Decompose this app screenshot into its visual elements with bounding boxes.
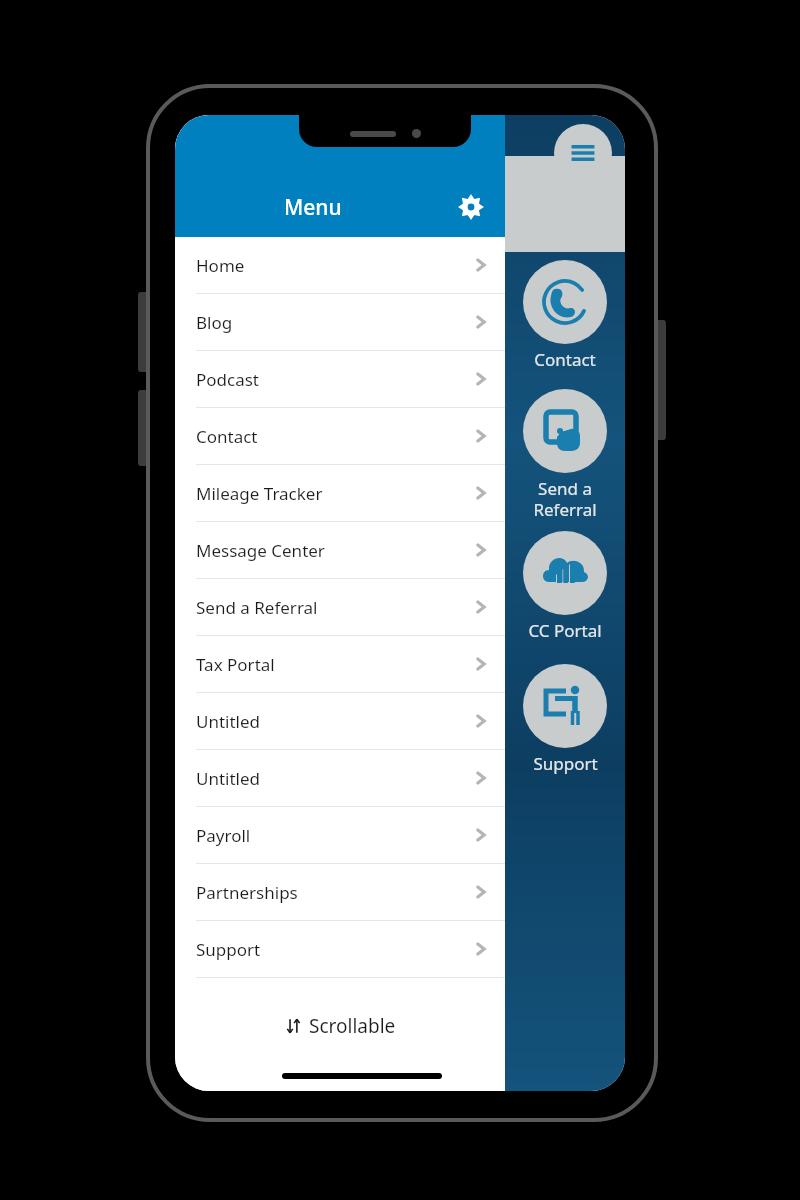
staticText: Support [196, 938, 261, 961]
button[interactable]: Support [505, 664, 625, 775]
button[interactable]: Contact [505, 260, 625, 371]
staticText: Send a Referral [533, 477, 597, 521]
staticText: Support [533, 752, 598, 775]
button[interactable]: Support [175, 921, 505, 978]
button[interactable]: Message Center [175, 522, 505, 579]
button[interactable]: Blog [175, 294, 505, 351]
button[interactable]: Menu [554, 124, 612, 182]
button[interactable]: Podcast [175, 351, 505, 408]
button[interactable]: Untitled [175, 750, 505, 807]
staticText: Payroll [196, 824, 251, 847]
button[interactable]: Partnerships [175, 864, 505, 921]
staticText: Scrollable [309, 1013, 396, 1039]
staticText: Untitled [196, 710, 261, 733]
button[interactable]: Send a Referral [505, 389, 625, 521]
staticText: Menu [284, 193, 342, 222]
button[interactable]: Contact [175, 408, 505, 465]
staticText: Message Center [196, 539, 325, 562]
button[interactable]: Settings [451, 187, 491, 227]
staticText: Mileage Tracker [196, 482, 323, 505]
staticText: Partnerships [196, 881, 298, 904]
button[interactable]: Home [175, 237, 505, 294]
button[interactable]: CC Portal [505, 531, 625, 642]
staticText: Send a Referral [196, 596, 318, 619]
button[interactable]: Untitled [175, 693, 505, 750]
button[interactable]: Tax Portal [175, 636, 505, 693]
staticText: Home [196, 254, 245, 277]
staticText: Contact [534, 348, 596, 371]
staticText: Blog [196, 311, 233, 334]
button[interactable]: Payroll [175, 807, 505, 864]
button[interactable]: Send a Referral [175, 579, 505, 636]
staticText: CC Portal [528, 619, 602, 642]
staticText: Untitled [196, 767, 261, 790]
staticText: Podcast [196, 368, 260, 391]
staticText: Contact [196, 425, 258, 448]
button[interactable]: Mileage Tracker [175, 465, 505, 522]
staticText: Tax Portal [196, 653, 275, 676]
